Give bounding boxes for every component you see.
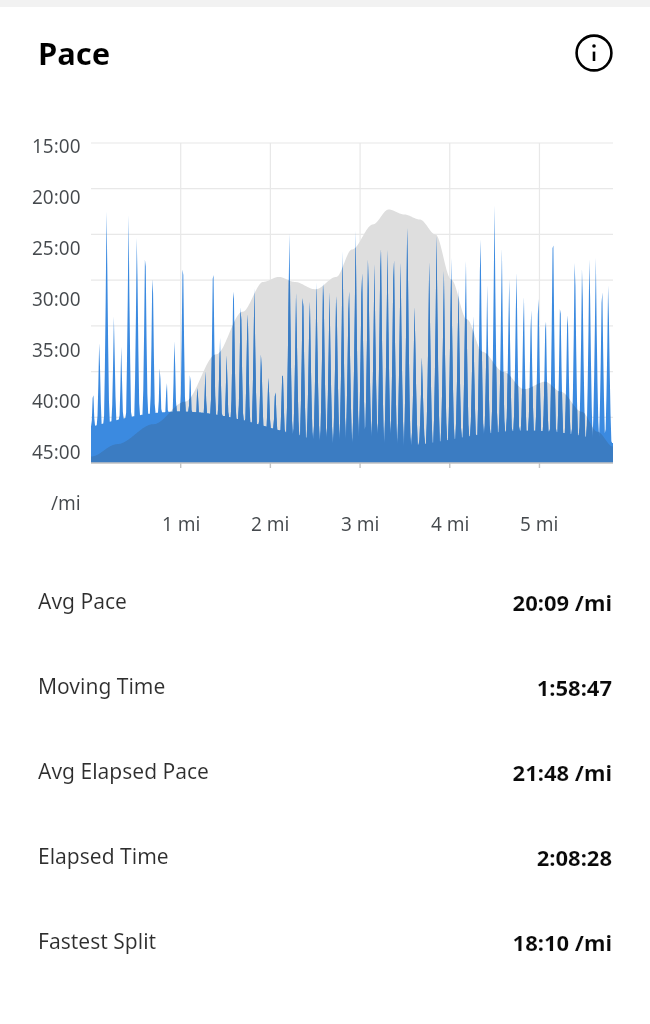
staticText: Avg Pace	[38, 587, 127, 616]
staticText: 4 mi	[431, 511, 470, 537]
button[interactable]: Fastest Split	[0, 899, 650, 984]
button[interactable]: Avg Elapsed Pace	[0, 729, 650, 814]
staticText: 2:08:28	[536, 842, 612, 872]
staticText: 25:00	[32, 235, 81, 261]
button[interactable]: Moving Time	[0, 644, 650, 729]
button[interactable]: Info about pace	[574, 33, 614, 73]
staticText: Fastest Split	[38, 927, 157, 956]
staticText: 45:00	[32, 439, 81, 465]
staticText: 35:00	[32, 337, 81, 363]
staticText: 2 mi	[251, 511, 290, 537]
staticText: 20:00	[32, 184, 81, 210]
staticText: 1:58:47	[536, 672, 612, 702]
staticText: 1 mi	[162, 511, 201, 537]
staticText: Elapsed Time	[38, 842, 169, 871]
button[interactable]: Avg Pace	[0, 559, 650, 644]
button[interactable]: Elapsed Time	[0, 814, 650, 899]
staticText: Avg Elapsed Pace	[38, 757, 209, 786]
staticText: Pace	[38, 32, 111, 74]
staticText: 21:48 /mi	[512, 757, 612, 787]
staticText: 15:00	[32, 133, 81, 159]
staticText: 40:00	[32, 388, 81, 414]
staticText: /mi	[51, 490, 81, 511]
staticText: 20:09 /mi	[512, 587, 612, 617]
staticText: 5 mi	[520, 511, 559, 537]
staticText: 3 mi	[341, 511, 380, 537]
staticText: Moving Time	[38, 672, 166, 701]
staticText: 18:10 /mi	[512, 927, 612, 957]
staticText: 30:00	[32, 286, 81, 312]
